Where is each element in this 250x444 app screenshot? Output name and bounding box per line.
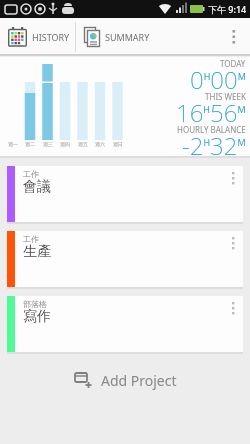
button[interactable]: SUMMARY bbox=[76, 18, 166, 56]
staticText: -2H32M bbox=[182, 129, 246, 162]
staticText: 工作 bbox=[23, 234, 39, 244]
staticText: SUMMARY bbox=[105, 31, 150, 43]
staticText: 16H56M bbox=[176, 96, 246, 129]
staticText: 生產 bbox=[23, 243, 51, 261]
button[interactable]: HISTORY bbox=[0, 18, 75, 56]
staticText: 週六 bbox=[95, 141, 105, 147]
button[interactable]: 工作 bbox=[7, 231, 243, 287]
staticText: 會議 bbox=[23, 178, 51, 196]
staticText: 部落格 bbox=[23, 299, 47, 309]
staticText: 週二 bbox=[25, 141, 35, 147]
button[interactable] bbox=[232, 30, 236, 46]
staticText: 下午 9:14 bbox=[208, 3, 247, 15]
staticText: THIS WEEK bbox=[205, 91, 246, 102]
staticText: 0H00M bbox=[190, 63, 246, 96]
staticText: 週一 bbox=[8, 141, 18, 147]
staticText: 週五 bbox=[78, 141, 88, 147]
staticText: Add Project bbox=[101, 371, 177, 390]
staticText: 週三 bbox=[43, 141, 53, 147]
staticText: TODAY bbox=[220, 58, 246, 69]
staticText: 工作 bbox=[23, 169, 39, 179]
button[interactable]: 工作 bbox=[7, 166, 243, 222]
staticText: HISTORY bbox=[32, 31, 70, 43]
button[interactable]: Add Project bbox=[0, 366, 250, 394]
staticText: 週四 bbox=[60, 141, 70, 147]
button[interactable]: 部落格 bbox=[7, 296, 243, 352]
staticText: 寫作 bbox=[23, 308, 51, 326]
staticText: HOURLY BALANCE bbox=[177, 124, 246, 135]
staticText: 週日 bbox=[113, 141, 123, 147]
